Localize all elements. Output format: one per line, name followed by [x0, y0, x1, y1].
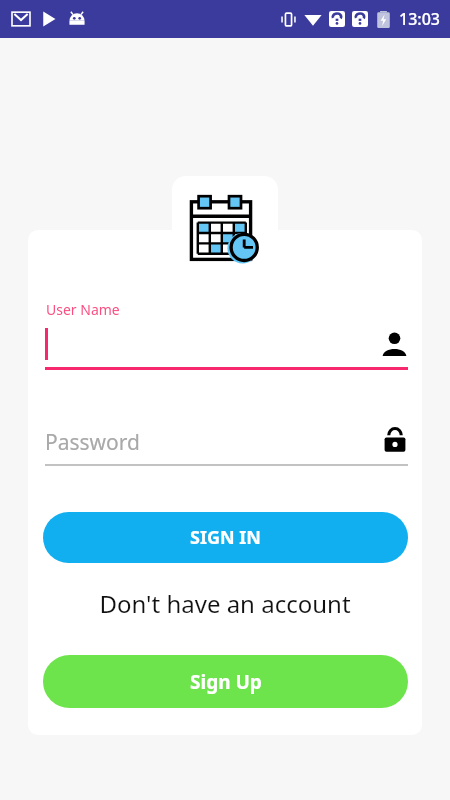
staticText: 13:03 — [399, 8, 440, 30]
staticText: Password — [45, 428, 140, 457]
staticText: Don't have an account — [0, 587, 450, 620]
staticText: User Name — [46, 300, 120, 319]
other: Password — [382, 427, 408, 453]
button[interactable]: SIGN IN — [43, 512, 408, 563]
staticText: Sign Up — [190, 669, 262, 695]
staticText: SIGN IN — [190, 525, 261, 550]
button[interactable]: Sign Up — [43, 655, 408, 708]
button[interactable]: Password — [45, 424, 408, 466]
other: User name — [381, 331, 408, 358]
button[interactable]: User name — [45, 324, 408, 370]
